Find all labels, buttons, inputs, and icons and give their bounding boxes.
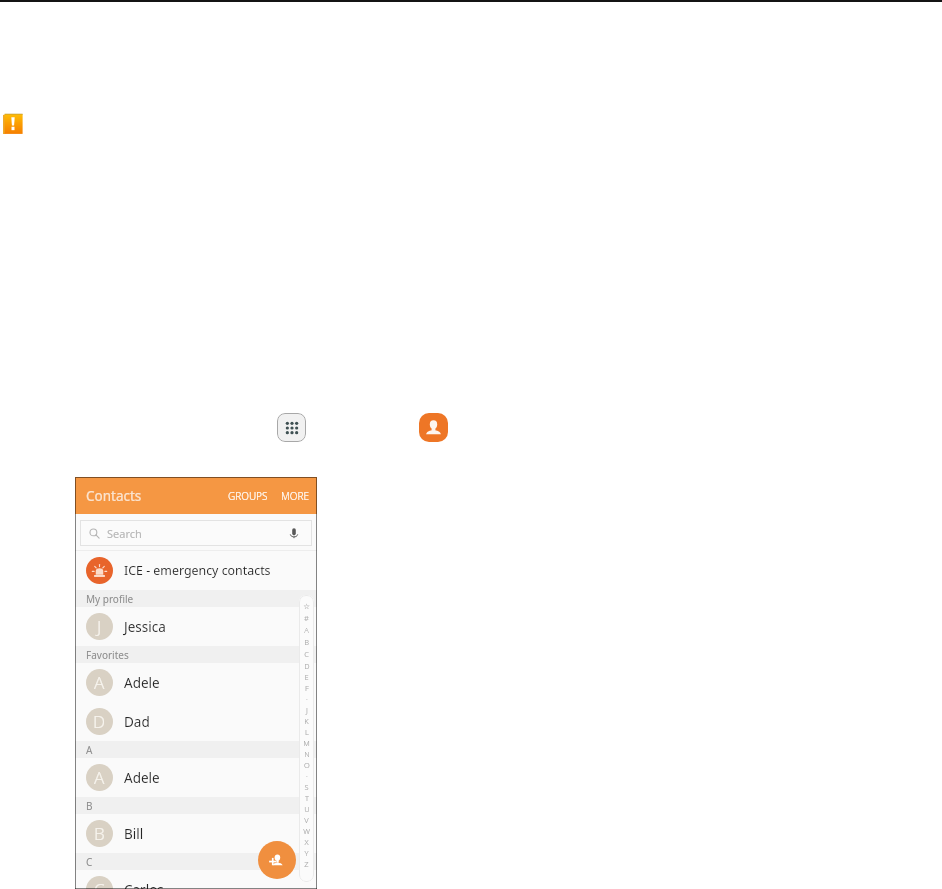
button[interactable]: Alphabet index	[299, 595, 314, 882]
button[interactable]: Contacts	[419, 413, 448, 442]
button[interactable]: D	[75, 702, 317, 741]
staticText: Dad	[124, 713, 150, 731]
staticText: Y	[304, 848, 309, 858]
button[interactable]: J	[75, 607, 317, 646]
staticText: J	[306, 705, 308, 715]
button[interactable]: Voice search	[287, 520, 301, 546]
staticText: Search	[107, 526, 142, 541]
staticText: D	[304, 661, 310, 671]
staticText: A	[94, 671, 105, 694]
staticText: MORE	[281, 489, 309, 503]
staticText: B	[94, 822, 105, 845]
staticText: #	[304, 613, 309, 623]
staticText: ·	[306, 694, 308, 704]
staticText: W	[303, 826, 310, 836]
staticText: Favorites	[86, 648, 129, 662]
staticText: T	[305, 793, 309, 803]
staticText: B	[86, 799, 93, 813]
button[interactable]: GROUPS	[224, 483, 272, 509]
staticText: Contacts	[86, 487, 142, 505]
staticText: Adele	[124, 674, 160, 692]
staticText: GROUPS	[228, 489, 268, 503]
staticText: L	[305, 727, 309, 737]
staticText: B	[304, 637, 309, 647]
button[interactable]: A	[75, 663, 317, 702]
button[interactable]: MORE	[277, 483, 313, 509]
staticText: E	[304, 672, 309, 682]
staticText: A	[94, 766, 105, 789]
staticText: D	[93, 710, 106, 733]
staticText: Bill	[124, 825, 144, 843]
staticText: A	[86, 743, 93, 757]
button[interactable]: A	[75, 758, 317, 797]
button[interactable]: Search	[80, 520, 312, 546]
staticText: M	[303, 738, 310, 748]
staticText: Jessica	[124, 618, 166, 636]
staticText: U	[304, 804, 310, 814]
staticText: C	[304, 649, 309, 659]
staticText: J	[97, 615, 102, 638]
button[interactable]: Add contact	[258, 841, 296, 879]
button[interactable]: ICE - emergency contacts	[75, 551, 317, 590]
staticText: Adele	[124, 769, 160, 787]
staticText: C	[86, 855, 93, 869]
staticText: F	[305, 683, 309, 693]
staticText: ·	[306, 771, 308, 781]
staticText: O	[304, 760, 310, 770]
staticText: ICE - emergency contacts	[124, 562, 271, 579]
button[interactable]: B	[75, 814, 317, 853]
staticText: V	[304, 815, 309, 825]
staticText: Z	[304, 859, 309, 869]
button[interactable]: C	[75, 870, 317, 889]
staticText: Carlos	[124, 881, 164, 889]
staticText: C	[94, 878, 105, 889]
button[interactable]: Apps	[277, 413, 306, 442]
staticText: N	[304, 749, 310, 759]
staticText: K	[304, 716, 309, 726]
staticText: S	[304, 782, 309, 792]
staticText: ☆	[303, 602, 310, 611]
staticText: My profile	[86, 592, 134, 606]
staticText: A	[304, 625, 309, 635]
staticText: X	[304, 837, 309, 847]
